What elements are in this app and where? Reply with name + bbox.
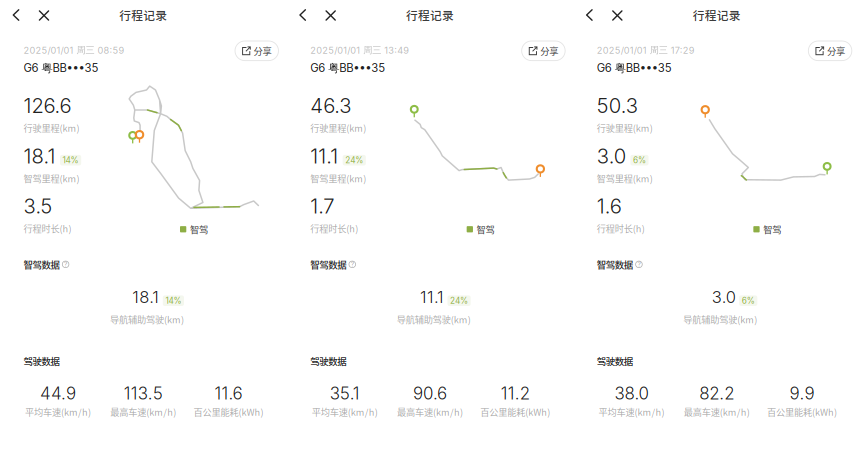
staticText: 行程记录 bbox=[406, 6, 454, 23]
staticText: 最高车速(km/h) bbox=[397, 405, 463, 418]
staticText: 最高车速(km/h) bbox=[110, 405, 176, 418]
staticText: 18.1 bbox=[132, 287, 159, 307]
staticText: 6% bbox=[742, 296, 755, 306]
staticText: 11.2 bbox=[501, 383, 530, 403]
staticText: 2025/01/01 周三 13:49 bbox=[310, 44, 409, 56]
staticText: 驾驶数据 bbox=[597, 354, 633, 368]
staticText: 分享 bbox=[254, 44, 272, 57]
staticText: 导航辅助驾驶(km) bbox=[110, 312, 184, 326]
staticText: 6% bbox=[633, 155, 646, 165]
staticText: 智驾 bbox=[763, 222, 781, 236]
staticText: 38.0 bbox=[614, 383, 648, 403]
staticText: 智驾数据 bbox=[310, 257, 346, 271]
staticText: G6 粤BB•••35 bbox=[23, 61, 98, 75]
staticText: 行驶里程(km) bbox=[597, 121, 653, 134]
staticText: 平均车速(km/h) bbox=[312, 405, 378, 418]
button[interactable]: Close bbox=[606, 4, 628, 26]
staticText: 智驾里程(km) bbox=[310, 171, 366, 185]
staticText: 平均车速(km/h) bbox=[598, 405, 664, 418]
staticText: 最高车速(km/h) bbox=[684, 405, 750, 418]
staticText: ? bbox=[64, 260, 67, 268]
button[interactable]: Close bbox=[33, 4, 55, 26]
staticText: 百公里能耗(kWh) bbox=[194, 405, 264, 418]
staticText: 126.6 bbox=[23, 93, 71, 118]
staticText: 1.7 bbox=[310, 194, 334, 218]
staticText: 百公里能耗(kWh) bbox=[767, 405, 837, 418]
staticText: 24% bbox=[450, 296, 468, 306]
staticText: 智驾里程(km) bbox=[597, 171, 653, 185]
staticText: 46.3 bbox=[310, 93, 351, 118]
staticText: 1.6 bbox=[597, 194, 622, 218]
staticText: 智驾 bbox=[477, 222, 495, 236]
staticText: 14% bbox=[63, 155, 79, 165]
staticText: 113.5 bbox=[124, 383, 163, 403]
staticText: 平均车速(km/h) bbox=[25, 405, 91, 418]
button[interactable]: Close bbox=[320, 4, 342, 26]
staticText: 行程记录 bbox=[119, 6, 167, 23]
staticText: 智驾 bbox=[190, 222, 208, 236]
button[interactable]: 分享 bbox=[808, 41, 852, 61]
staticText: 智驾里程(km) bbox=[23, 171, 79, 185]
staticText: 35.1 bbox=[330, 383, 360, 403]
staticText: 3.5 bbox=[23, 194, 52, 218]
staticText: 行程时长(h) bbox=[310, 221, 358, 235]
staticText: 11.6 bbox=[215, 383, 243, 403]
staticText: 90.6 bbox=[413, 383, 447, 403]
staticText: G6 粤BB•••35 bbox=[310, 61, 385, 75]
staticText: 行程时长(h) bbox=[23, 221, 71, 235]
staticText: 2025/01/01 周三 17:29 bbox=[597, 44, 695, 56]
staticText: 行驶里程(km) bbox=[310, 121, 366, 134]
staticText: 2025/01/01 周三 08:59 bbox=[23, 44, 124, 56]
staticText: ? bbox=[637, 260, 640, 268]
button[interactable]: Back bbox=[5, 4, 27, 26]
staticText: 行驶里程(km) bbox=[23, 121, 79, 134]
staticText: 百公里能耗(kWh) bbox=[480, 405, 550, 418]
staticText: 18.1 bbox=[23, 144, 55, 168]
staticText: 9.9 bbox=[789, 383, 814, 403]
staticText: 14% bbox=[165, 296, 181, 306]
staticText: 行程时长(h) bbox=[597, 221, 645, 235]
button[interactable]: Back bbox=[578, 4, 600, 26]
staticText: 导航辅助驾驶(km) bbox=[683, 312, 757, 326]
staticText: 11.1 bbox=[310, 144, 338, 168]
staticText: 3.0 bbox=[712, 287, 736, 307]
staticText: G6 粤BB•••35 bbox=[597, 61, 672, 75]
button[interactable]: 分享 bbox=[522, 41, 565, 61]
staticText: 驾驶数据 bbox=[310, 354, 346, 368]
staticText: 智驾数据 bbox=[23, 257, 59, 271]
staticText: 驾驶数据 bbox=[23, 354, 59, 368]
staticText: 分享 bbox=[827, 44, 845, 57]
staticText: 行程记录 bbox=[693, 6, 741, 23]
staticText: 11.1 bbox=[420, 287, 444, 307]
staticText: 50.3 bbox=[597, 93, 638, 118]
button[interactable]: 分享 bbox=[235, 41, 278, 61]
staticText: 24% bbox=[345, 155, 363, 165]
staticText: 分享 bbox=[540, 44, 558, 57]
staticText: 44.9 bbox=[40, 383, 76, 403]
staticText: 3.0 bbox=[597, 144, 626, 168]
staticText: 智驾数据 bbox=[597, 257, 633, 271]
staticText: 导航辅助驾驶(km) bbox=[397, 312, 471, 326]
staticText: ? bbox=[351, 260, 354, 268]
button[interactable]: Back bbox=[292, 4, 314, 26]
staticText: 82.2 bbox=[699, 383, 734, 403]
